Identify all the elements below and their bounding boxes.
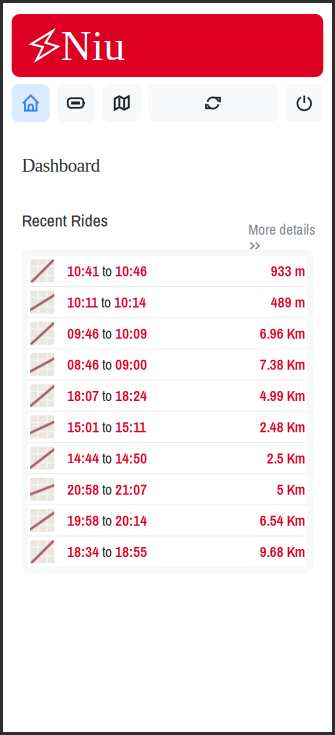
staticText: to [98,292,114,312]
staticText: 15:01 [67,417,99,437]
button[interactable]: 15:01 [28,412,307,442]
button[interactable]: 08:46 [28,349,307,380]
staticText: 08:46 [67,355,99,374]
staticText: to [99,323,115,343]
staticText: to [99,542,115,562]
staticText: 18:07 [67,386,99,406]
staticText: 7.38 Km [260,355,305,374]
staticText: to [99,448,115,468]
button[interactable]: 09:46 [28,318,307,348]
button[interactable]: 10:41 [28,256,307,286]
staticText: 09:00 [115,355,147,374]
staticText: to [99,386,115,406]
staticText: 4.99 Km [260,386,305,406]
staticText: 09:46 [67,323,99,343]
staticText: 10:14 [114,292,146,312]
button[interactable]: 19:58 [28,505,307,536]
staticText: 2.5 Km [267,448,305,468]
staticText: 18:24 [115,386,147,406]
staticText: 5 Km [277,479,305,499]
button[interactable]: 14:44 [28,443,307,473]
button[interactable]: Home [12,84,50,122]
staticText: 6.96 Km [260,323,305,343]
button[interactable]: 20:58 [28,474,307,504]
staticText: More details [248,220,315,239]
staticText: 9.68 Km [260,542,305,562]
staticText: 10:46 [115,261,147,281]
staticText: 21:07 [115,479,147,499]
staticText: to [99,479,115,499]
staticText: 10:09 [115,323,147,343]
staticText: 20:14 [115,511,147,530]
staticText: 20:58 [67,479,99,499]
staticText: 14:44 [67,448,99,468]
staticText: 10:41 [67,261,99,281]
staticText: 10:11 [67,292,98,312]
staticText: Recent Rides [22,209,108,232]
button[interactable]: More details [248,209,323,239]
staticText: 15:11 [115,417,146,437]
button[interactable]: 18:34 [28,537,307,567]
button[interactable]: 10:11 [28,287,307,317]
staticText: 933 m [271,261,305,281]
staticText: Niu [61,22,125,69]
button[interactable]: Battery [57,84,95,122]
button[interactable]: Map [103,84,141,122]
staticText: 18:34 [67,542,99,562]
staticText: 18:55 [115,542,147,562]
staticText: 14:50 [115,448,147,468]
staticText: to [99,261,115,281]
staticText: to [99,355,115,374]
staticText: to [99,511,115,530]
staticText: Dashboard [22,155,100,176]
staticText: 489 m [271,292,305,312]
staticText: 19:58 [67,511,99,530]
staticText: 6.54 Km [260,511,305,530]
button[interactable]: 18:07 [28,381,307,411]
staticText: to [99,417,115,437]
button[interactable]: Refresh [148,84,278,122]
staticText: 2.48 Km [260,417,305,437]
button[interactable]: Power [285,84,323,122]
